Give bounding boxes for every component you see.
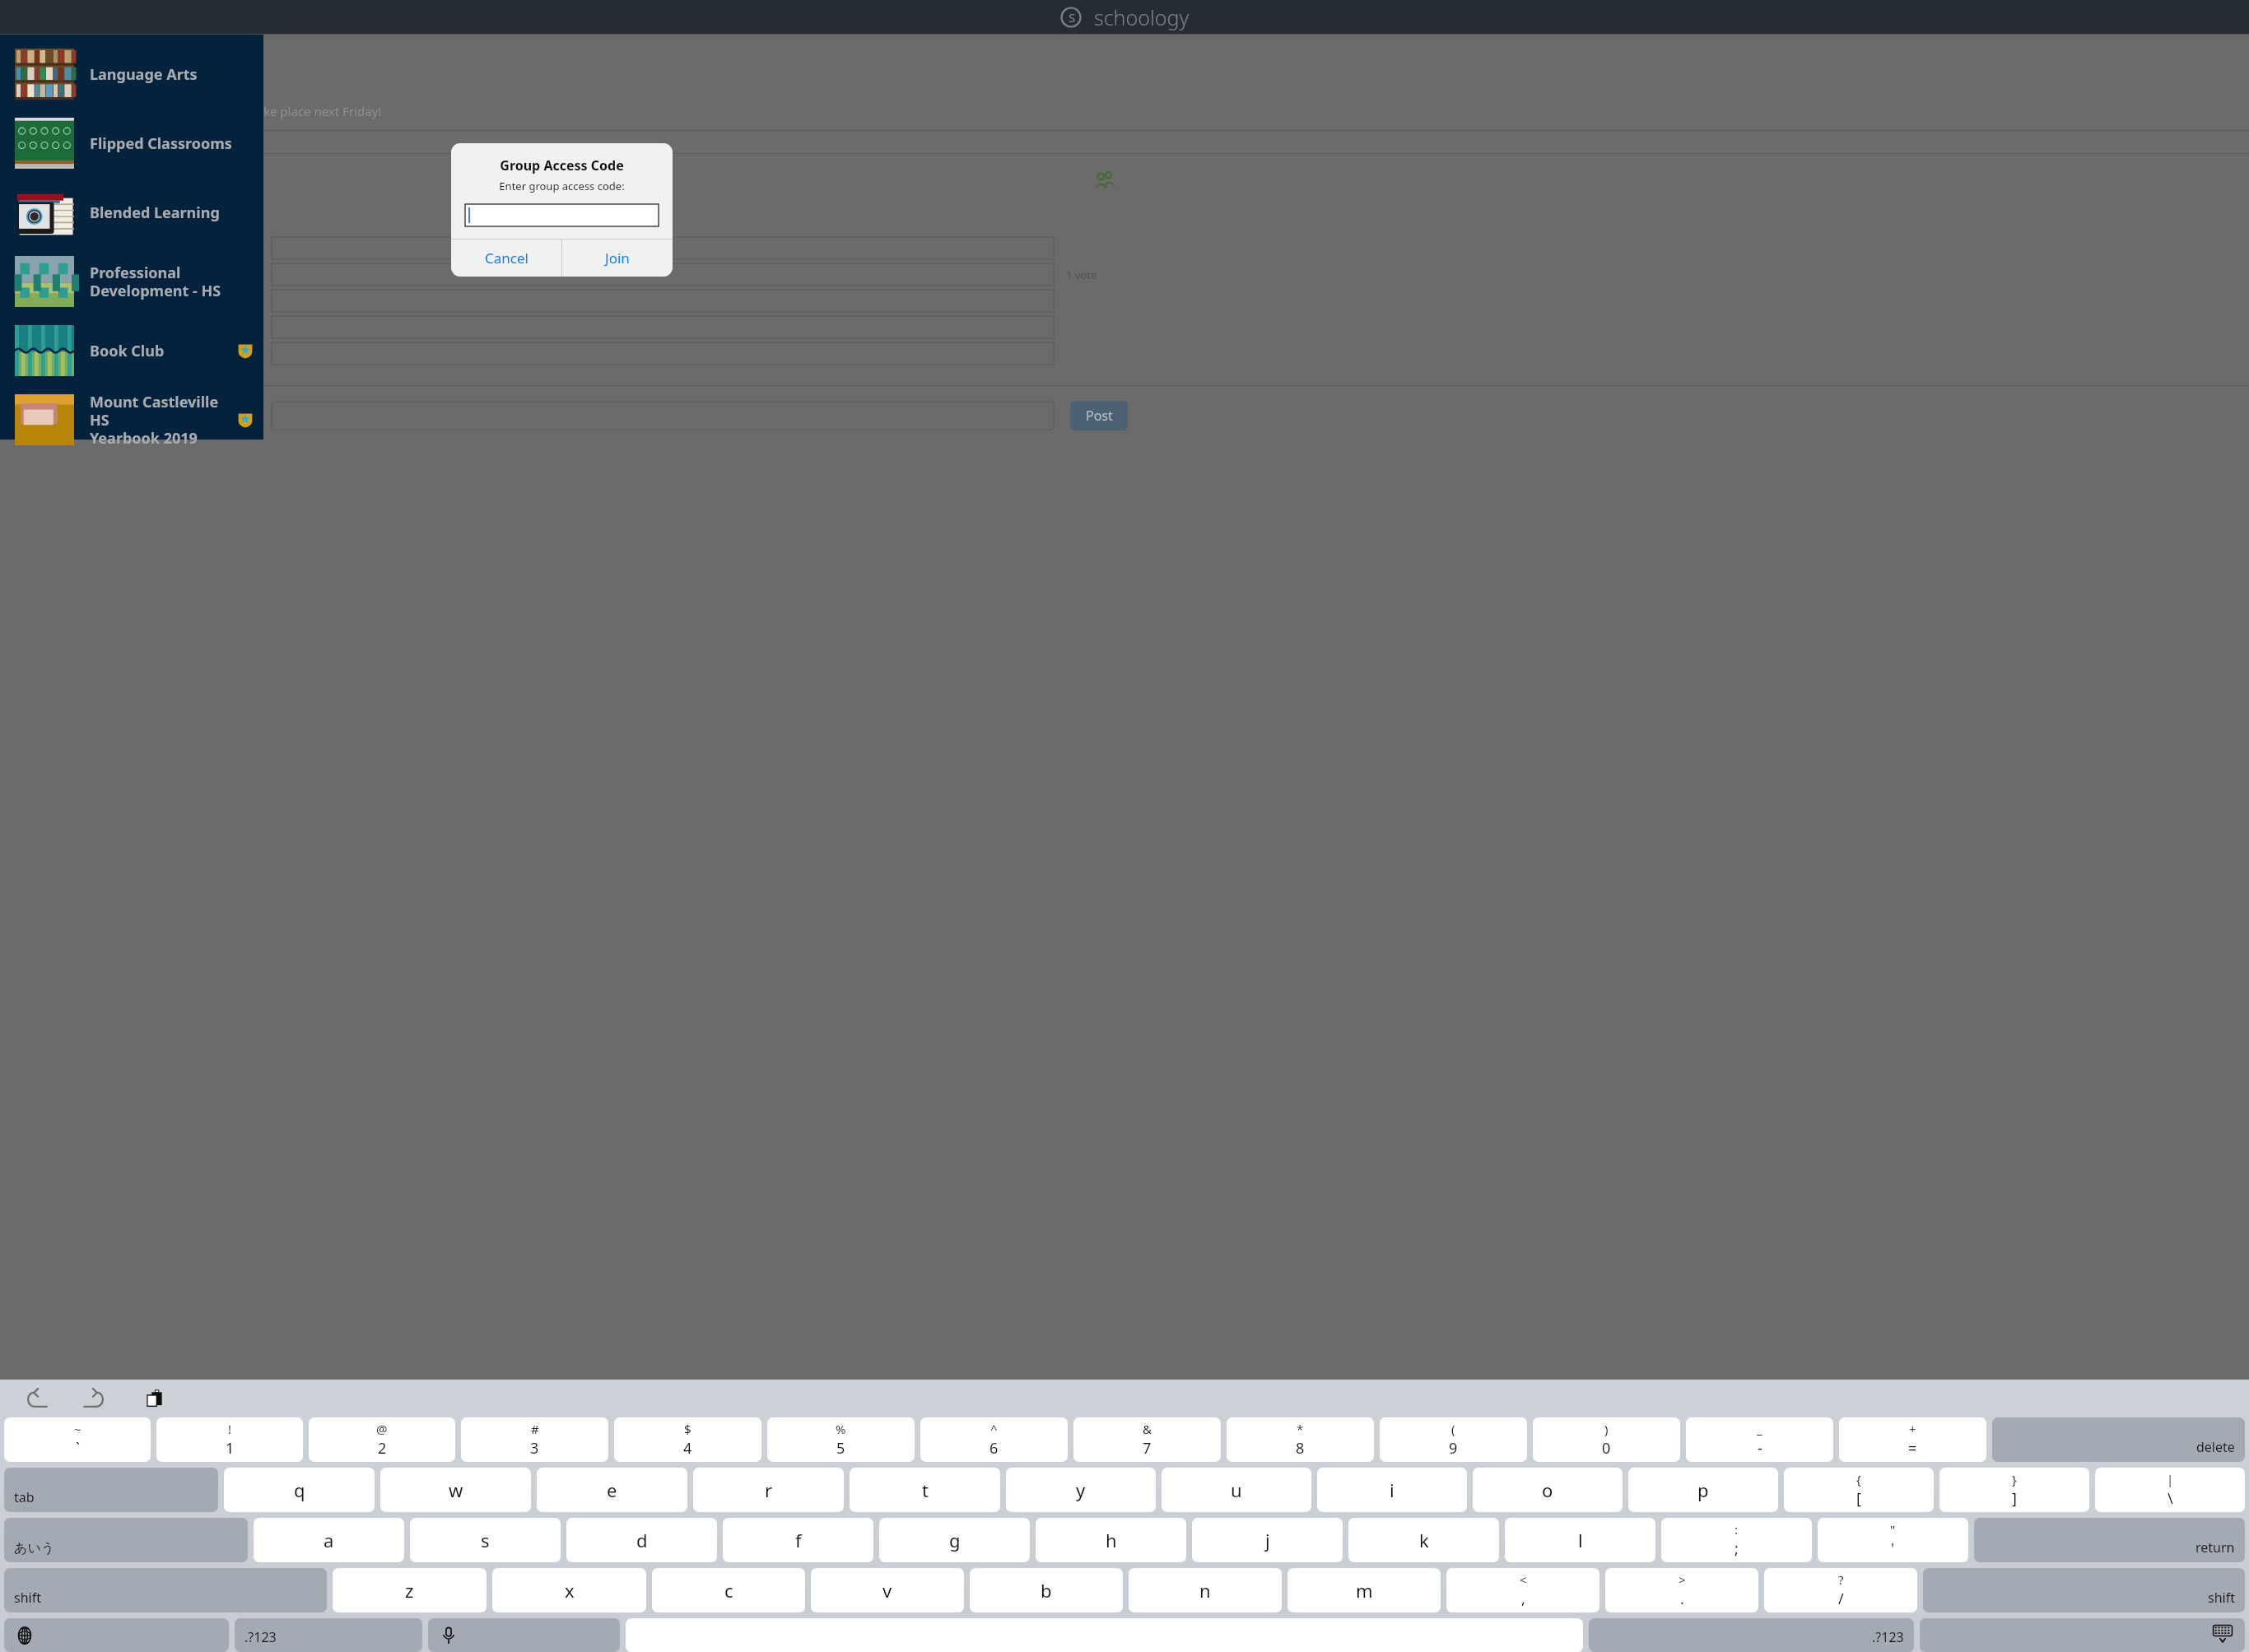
button[interactable]: i xyxy=(1317,1468,1467,1512)
button[interactable]: Blended Learning xyxy=(0,178,263,247)
button[interactable]: s xyxy=(410,1518,561,1562)
button[interactable]: Join xyxy=(562,240,673,277)
button[interactable]: q xyxy=(224,1468,375,1512)
staticText: _ xyxy=(1757,1421,1762,1437)
button[interactable]: m xyxy=(1287,1568,1441,1612)
staticText: d xyxy=(636,1528,648,1552)
button[interactable]: & xyxy=(1073,1417,1221,1462)
button[interactable]: Hide keyboard xyxy=(1920,1618,2245,1652)
button[interactable]: Language Arts xyxy=(0,40,263,109)
button[interactable]: p xyxy=(1628,1468,1778,1512)
button[interactable]: d xyxy=(566,1518,717,1562)
button[interactable]: あいう xyxy=(4,1518,248,1562)
button[interactable]: : xyxy=(1661,1518,1812,1562)
button[interactable]: return xyxy=(1974,1518,2245,1562)
button[interactable]: Flipped Classrooms xyxy=(0,109,263,178)
staticText: tab xyxy=(14,1488,35,1506)
button[interactable] xyxy=(465,204,659,226)
button[interactable]: # xyxy=(461,1417,608,1462)
button[interactable]: @ xyxy=(309,1417,455,1462)
staticText: * xyxy=(1297,1421,1304,1437)
staticText: j xyxy=(1265,1528,1270,1552)
staticText: a xyxy=(324,1528,334,1552)
button[interactable]: ^ xyxy=(920,1417,1068,1462)
button[interactable]: { xyxy=(1784,1468,1934,1512)
button[interactable]: g xyxy=(879,1518,1030,1562)
button[interactable]: " xyxy=(1818,1518,1968,1562)
button[interactable]: c xyxy=(652,1568,805,1612)
button[interactable] xyxy=(626,1618,1583,1652)
button[interactable]: Add group xyxy=(221,2,257,38)
staticText: .?123 xyxy=(1872,1628,1904,1646)
button[interactable]: .?123 xyxy=(235,1618,422,1652)
staticText: delete xyxy=(2196,1438,2235,1456)
button[interactable]: } xyxy=(1939,1468,2089,1512)
staticText: 8 xyxy=(1296,1438,1305,1459)
button[interactable]: Post xyxy=(1070,401,1128,430)
staticText: y xyxy=(1076,1477,1086,1502)
staticText: . xyxy=(1680,1589,1684,1609)
button[interactable]: Book Club xyxy=(0,316,263,385)
button[interactable]: $ xyxy=(614,1417,761,1462)
button[interactable]: r xyxy=(693,1468,844,1512)
button[interactable]: | xyxy=(2095,1468,2245,1512)
button[interactable]: j xyxy=(1192,1518,1343,1562)
button[interactable]: delete xyxy=(1992,1417,2245,1462)
staticText: > xyxy=(1679,1571,1686,1588)
button[interactable]: u xyxy=(1162,1468,1311,1512)
staticText: ~ xyxy=(74,1421,81,1437)
button[interactable]: Dictation xyxy=(428,1618,620,1652)
button[interactable]: l xyxy=(1505,1518,1655,1562)
button[interactable]: + xyxy=(1839,1417,1986,1462)
button[interactable]: ) xyxy=(1533,1417,1680,1462)
button[interactable]: * xyxy=(1227,1417,1374,1462)
button[interactable]: h xyxy=(1036,1518,1186,1562)
button[interactable]: shift xyxy=(1923,1568,2245,1612)
button[interactable]: ( xyxy=(1380,1417,1527,1462)
button[interactable]: % xyxy=(767,1417,915,1462)
button[interactable]: t xyxy=(850,1468,1000,1512)
button[interactable]: a xyxy=(254,1518,404,1562)
button[interactable]: tab xyxy=(4,1468,218,1512)
button[interactable]: o xyxy=(1473,1468,1623,1512)
staticText: { xyxy=(1856,1471,1861,1487)
button[interactable]: n xyxy=(1129,1568,1282,1612)
staticText: + xyxy=(1909,1421,1916,1437)
button[interactable]: > xyxy=(1605,1568,1758,1612)
button[interactable]: Redo xyxy=(76,1380,112,1417)
staticText: r xyxy=(765,1477,773,1502)
button[interactable]: e xyxy=(537,1468,687,1512)
button[interactable]: f xyxy=(723,1518,873,1562)
button[interactable]: Undo xyxy=(18,1380,54,1417)
staticText: g xyxy=(949,1528,961,1552)
button[interactable]: w xyxy=(380,1468,531,1512)
button[interactable]: ? xyxy=(1764,1568,1917,1612)
button[interactable]: Switch keyboard xyxy=(4,1618,229,1652)
staticText: 1 vote xyxy=(1066,268,1097,282)
button[interactable]: Professional Development - HS xyxy=(0,247,263,316)
button[interactable]: Mount Castleville HS Yearbook 2019 xyxy=(0,385,263,454)
staticText: \ xyxy=(2168,1488,2173,1509)
button[interactable]: ! xyxy=(156,1417,303,1462)
staticText: Group Access Code xyxy=(451,156,673,175)
button[interactable]: < xyxy=(1446,1568,1599,1612)
button[interactable]: k xyxy=(1348,1518,1499,1562)
button[interactable]: b xyxy=(970,1568,1123,1612)
button[interactable]: x xyxy=(492,1568,646,1612)
staticText: k xyxy=(1419,1528,1429,1552)
button[interactable]: ~ xyxy=(4,1417,151,1462)
button[interactable]: Back xyxy=(12,2,48,38)
button[interactable]: v xyxy=(811,1568,964,1612)
button[interactable]: Cancel xyxy=(451,240,561,277)
staticText: Cancel xyxy=(485,249,528,268)
staticText: f xyxy=(795,1528,802,1552)
button[interactable]: z xyxy=(333,1568,487,1612)
staticText: 9 xyxy=(1449,1438,1458,1459)
button[interactable]: Paste xyxy=(137,1380,173,1417)
staticText: ) xyxy=(1604,1421,1609,1437)
button[interactable]: _ xyxy=(1686,1417,1833,1462)
button[interactable]: .?123 xyxy=(1589,1618,1914,1652)
staticText: @ xyxy=(376,1421,388,1437)
button[interactable]: shift xyxy=(4,1568,327,1612)
button[interactable]: y xyxy=(1006,1468,1156,1512)
